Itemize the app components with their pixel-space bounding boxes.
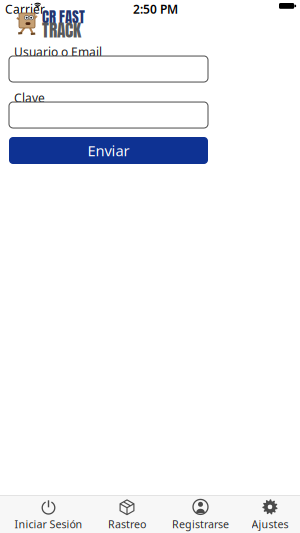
button[interactable]: Registrarse xyxy=(164,497,236,533)
staticText: Clave xyxy=(14,90,45,106)
staticText: Enviar xyxy=(87,141,129,160)
staticText: TRACK xyxy=(42,17,81,43)
button[interactable]: Enviar xyxy=(9,137,208,164)
staticText: 2:50 PM xyxy=(133,1,178,17)
staticText: Rastreo xyxy=(108,517,146,531)
staticText: Registrarse xyxy=(172,517,229,531)
staticText: Usuario o Email xyxy=(14,44,102,60)
staticText: Ajustes xyxy=(251,517,288,531)
staticText: Iniciar Sesión xyxy=(14,517,82,531)
staticText: CR FAST xyxy=(42,6,85,28)
staticText: Carrier xyxy=(5,1,45,17)
button[interactable]: Rastreo xyxy=(91,497,163,533)
button[interactable]: Ajustes xyxy=(234,497,300,533)
button[interactable]: Iniciar Sesión xyxy=(12,497,84,533)
